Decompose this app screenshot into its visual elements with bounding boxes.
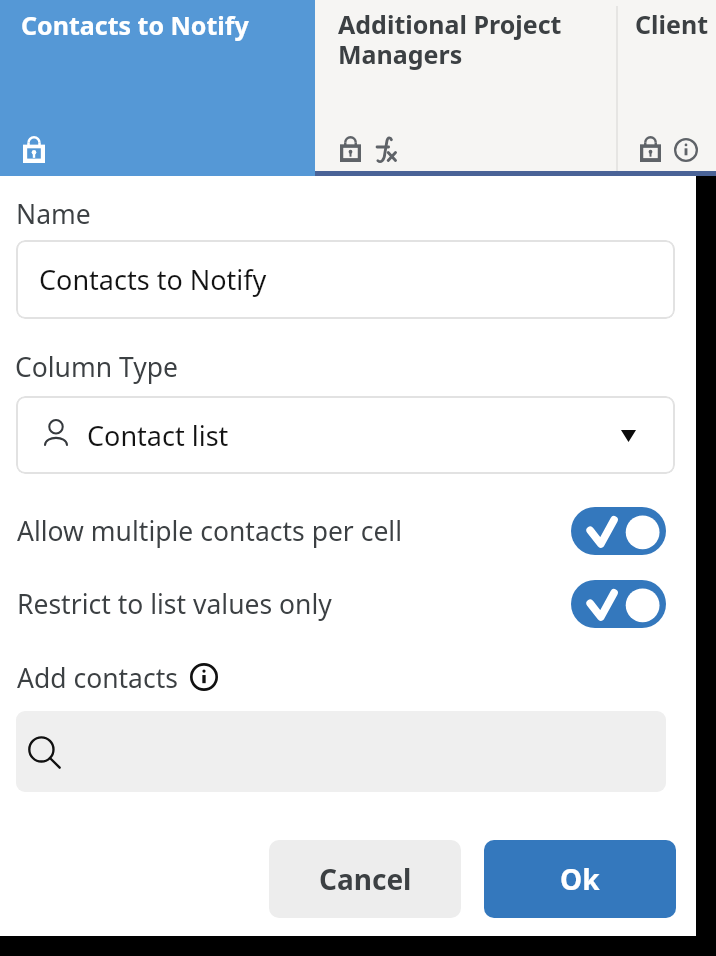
- button[interactable]: Search: [16, 711, 666, 792]
- staticText: Name: [16, 196, 91, 232]
- staticText: Contacts to Notify: [39, 261, 267, 298]
- button[interactable]: Add contacts: [16, 660, 222, 696]
- staticText: Contact list: [87, 417, 229, 454]
- other: Info: [674, 138, 698, 162]
- button[interactable]: Allow multiple contacts per cell: [0, 507, 696, 555]
- staticText: Add contacts: [17, 660, 178, 696]
- staticText: Cancel: [319, 860, 412, 898]
- button[interactable]: Ok: [484, 840, 676, 918]
- button[interactable]: Contacts to Notify: [16, 240, 675, 319]
- staticText: Allow multiple contacts per cell: [17, 513, 403, 549]
- other: More info: [190, 663, 218, 691]
- other: Locked: [340, 136, 361, 162]
- button[interactable]: Additional Project Managers: [315, 0, 696, 176]
- button[interactable]: Contact list: [16, 396, 675, 474]
- other: Formula: [376, 137, 397, 162]
- button[interactable]: Contacts to Notify: [0, 0, 315, 176]
- staticText: Restrict to list values only: [17, 586, 332, 622]
- button[interactable]: Client: [617, 0, 716, 176]
- staticText: Client: [635, 7, 709, 41]
- staticText: Column Type: [15, 349, 179, 385]
- other: Search: [29, 737, 60, 768]
- other: Locked: [23, 136, 45, 163]
- staticText: Contacts to Notify: [21, 8, 249, 42]
- staticText: Ok: [560, 860, 600, 898]
- staticText: Additional Project Managers: [338, 7, 562, 71]
- button[interactable]: Cancel: [269, 840, 461, 918]
- other: Locked: [640, 136, 661, 162]
- button[interactable]: Restrict to list values only: [0, 580, 696, 628]
